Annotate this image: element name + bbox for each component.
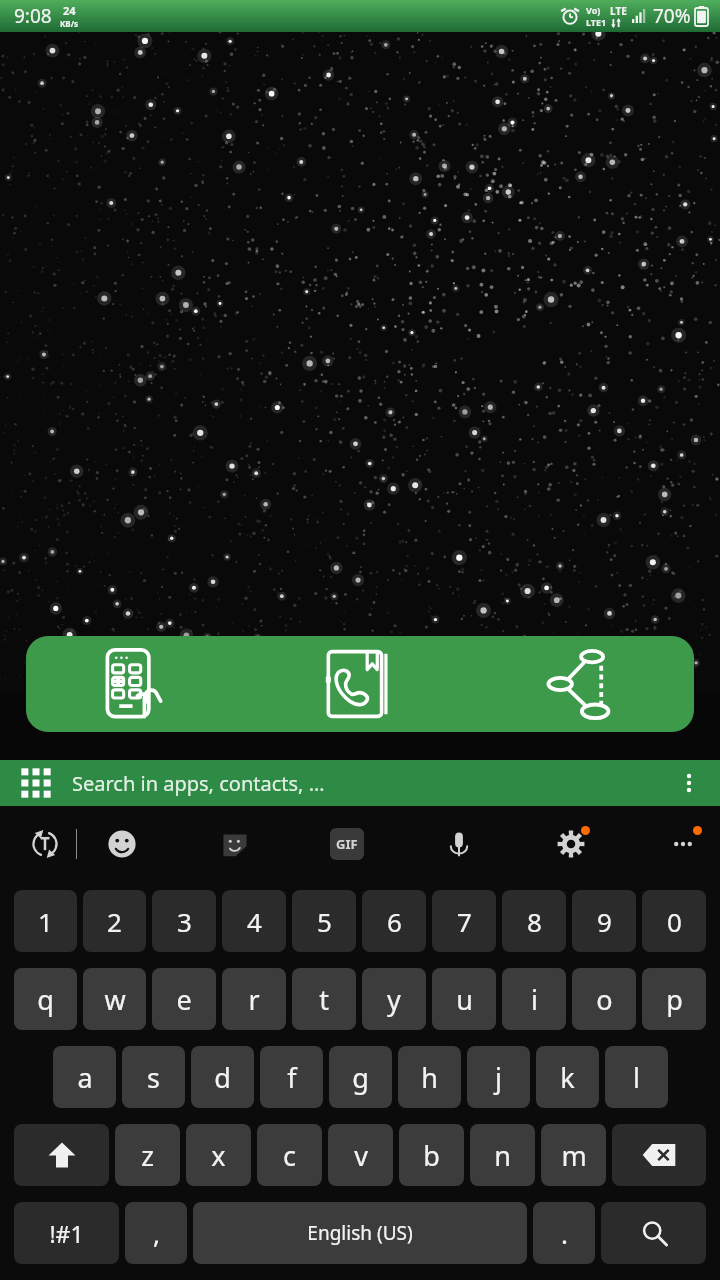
staticText: q <box>37 981 54 1018</box>
button[interactable]: !#1 <box>14 1202 119 1264</box>
button[interactable]: u <box>432 968 496 1030</box>
button[interactable]: Apps on phone <box>26 636 248 732</box>
button[interactable]: y <box>362 968 426 1030</box>
button[interactable]: . <box>533 1202 595 1264</box>
staticText: LTE <box>610 4 627 18</box>
button[interactable]: s <box>122 1046 185 1108</box>
button[interactable]: 1 <box>14 890 77 952</box>
staticText: . <box>561 1216 568 1251</box>
button[interactable]: c <box>257 1124 322 1186</box>
button[interactable]: 7 <box>432 890 496 952</box>
staticText: x <box>211 1137 226 1174</box>
button[interactable] <box>612 1124 706 1186</box>
button[interactable]: g <box>329 1046 392 1108</box>
button[interactable]: Stickers <box>212 821 258 867</box>
staticText: 1 <box>38 904 53 939</box>
staticText: 4 <box>247 904 262 939</box>
staticText: c <box>283 1137 296 1174</box>
button[interactable]: 0 <box>642 890 706 952</box>
staticText: Vo) <box>586 4 601 16</box>
staticText: z <box>141 1137 154 1174</box>
button[interactable]: w <box>83 968 146 1030</box>
staticText: 5 <box>317 904 332 939</box>
staticText: o <box>596 981 613 1018</box>
button[interactable]: All apps <box>0 760 720 806</box>
button[interactable]: Contacts <box>248 636 471 732</box>
button[interactable]: h <box>398 1046 461 1108</box>
button[interactable]: e <box>152 968 216 1030</box>
staticText: i <box>531 981 538 1018</box>
staticText: h <box>421 1059 438 1096</box>
staticText: Search in apps, contacts, … <box>72 770 325 797</box>
staticText: u <box>456 981 473 1018</box>
button[interactable]: o <box>572 968 636 1030</box>
staticText: r <box>248 981 260 1018</box>
staticText: 0 <box>667 904 682 939</box>
staticText: a <box>77 1059 93 1096</box>
button[interactable]: z <box>115 1124 180 1186</box>
button[interactable]: f <box>260 1046 323 1108</box>
button[interactable]: k <box>536 1046 599 1108</box>
staticText: , <box>153 1216 160 1251</box>
staticText: English (US) <box>307 1220 413 1246</box>
button[interactable]: j <box>467 1046 530 1108</box>
button[interactable]: English (US) <box>193 1202 527 1264</box>
staticText: p <box>666 981 683 1018</box>
staticText: b <box>423 1137 440 1174</box>
other: Shift <box>14 1124 109 1186</box>
staticText: GIF <box>336 835 358 853</box>
staticText: f <box>287 1059 297 1096</box>
button[interactable]: More <box>660 821 706 867</box>
button[interactable]: Emoji <box>99 821 145 867</box>
button[interactable]: 2 <box>83 890 146 952</box>
button[interactable]: b <box>399 1124 464 1186</box>
button[interactable]: i <box>502 968 566 1030</box>
staticText: y <box>387 981 401 1018</box>
staticText: 2 <box>107 904 122 939</box>
button[interactable]: Voice input <box>436 821 482 867</box>
button[interactable]: x <box>186 1124 251 1186</box>
staticText: 3 <box>177 904 192 939</box>
button[interactable]: d <box>191 1046 254 1108</box>
staticText: l <box>633 1059 640 1096</box>
button[interactable]: r <box>222 968 286 1030</box>
staticText: 70% <box>653 3 691 29</box>
button[interactable] <box>14 1124 109 1186</box>
button[interactable]: q <box>14 968 77 1030</box>
button[interactable]: n <box>470 1124 535 1186</box>
staticText: 6 <box>387 904 402 939</box>
staticText: 7 <box>457 904 472 939</box>
button[interactable]: p <box>642 968 706 1030</box>
staticText: 8 <box>527 904 542 939</box>
button[interactable]: 5 <box>292 890 356 952</box>
staticText: w <box>104 981 126 1018</box>
button[interactable]: m <box>541 1124 606 1186</box>
button[interactable]: Translate <box>22 821 68 867</box>
staticText: t <box>319 981 329 1018</box>
button[interactable]: , <box>125 1202 187 1264</box>
other: Search <box>601 1202 706 1264</box>
staticText: v <box>354 1137 368 1174</box>
button[interactable]: 6 <box>362 890 426 952</box>
button[interactable]: l <box>605 1046 668 1108</box>
staticText: d <box>214 1059 231 1096</box>
button[interactable]: 4 <box>222 890 286 952</box>
button[interactable]: a <box>53 1046 116 1108</box>
staticText: s <box>147 1059 160 1096</box>
staticText: 9:08 <box>14 3 52 29</box>
button[interactable]: More options <box>674 768 704 798</box>
button[interactable]: 3 <box>152 890 216 952</box>
button[interactable]: v <box>328 1124 393 1186</box>
button[interactable]: Connections <box>471 636 694 732</box>
button[interactable]: All apps <box>18 765 54 801</box>
button[interactable]: GIF <box>324 821 370 867</box>
button[interactable]: 8 <box>502 890 566 952</box>
staticText: k <box>560 1059 575 1096</box>
staticText: n <box>494 1137 511 1174</box>
button[interactable]: 9 <box>572 890 636 952</box>
button[interactable]: Keyboard settings <box>548 821 594 867</box>
button[interactable] <box>601 1202 706 1264</box>
button[interactable]: t <box>292 968 356 1030</box>
staticText: 24 <box>63 3 76 18</box>
staticText: 9 <box>597 904 612 939</box>
